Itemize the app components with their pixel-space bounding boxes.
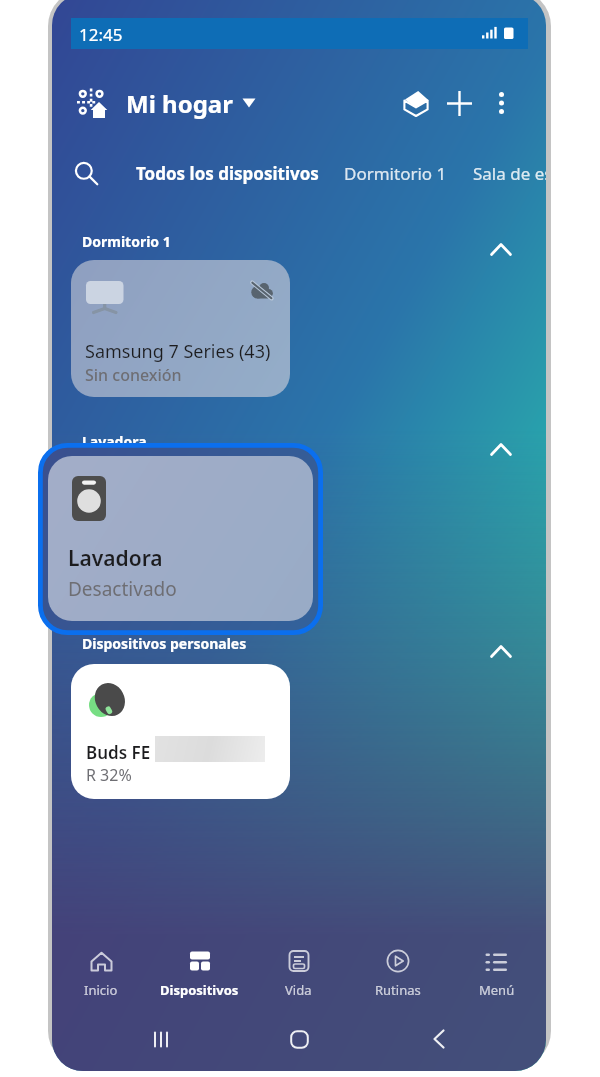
button[interactable]: Dispositivos [150, 938, 249, 999]
staticText: Lavadora [68, 544, 163, 573]
staticText: Lavadora [82, 432, 147, 451]
button[interactable]: Search [66, 153, 106, 193]
button[interactable]: Collapse group [482, 230, 520, 268]
staticText: Vida [285, 981, 312, 999]
staticText: Dormitorio 1 [344, 162, 447, 185]
staticText: Sala de estar [473, 162, 546, 185]
button[interactable]: Sala de estar [473, 153, 546, 193]
button[interactable]: Vida [249, 938, 348, 999]
button[interactable]: Collapse group [482, 632, 520, 670]
staticText: Dispositivos [160, 981, 239, 999]
button[interactable]: Dormitorio 1 [344, 153, 447, 193]
staticText: Inicio [84, 981, 118, 999]
staticText: Dispositivos personales [82, 634, 247, 653]
button[interactable]: Lavadora [48, 456, 313, 621]
staticText: Todos los dispositivos [136, 162, 319, 185]
button[interactable]: Home [280, 1020, 318, 1058]
button[interactable]: Add device [440, 84, 478, 122]
button[interactable]: Back [420, 1020, 458, 1058]
staticText: Samsung 7 Series (43) [85, 339, 271, 364]
button[interactable]: Samsung 7 Series (43) [71, 260, 290, 397]
button[interactable]: Buds FE [71, 664, 290, 799]
button[interactable]: Mi hogar [74, 84, 256, 122]
staticText: Sin conexión [85, 364, 182, 386]
staticText: Dormitorio 1 [82, 232, 171, 251]
button[interactable]: Recents [142, 1020, 180, 1058]
button[interactable]: Todos los dispositivos [136, 153, 319, 193]
button[interactable]: More options [482, 84, 520, 122]
button[interactable]: Map view [397, 84, 435, 122]
staticText: Rutinas [375, 981, 421, 999]
button[interactable]: Menú [447, 938, 546, 999]
button[interactable]: Rutinas [348, 938, 447, 999]
staticText: Menú [479, 981, 515, 999]
staticText: Desactivado [68, 576, 177, 602]
button[interactable]: Collapse group [482, 430, 520, 468]
staticText: Buds FE [86, 741, 151, 764]
staticText: 12:45 [79, 23, 123, 46]
staticText: R 32% [86, 764, 132, 786]
button[interactable]: Inicio [52, 938, 150, 999]
staticText: Mi hogar [126, 87, 233, 120]
